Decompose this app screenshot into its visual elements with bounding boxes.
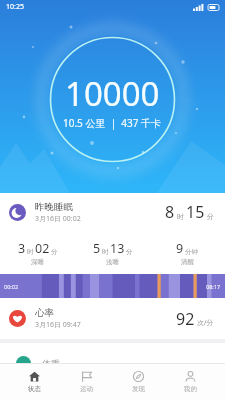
- button[interactable]: Profile: [164, 364, 216, 400]
- button[interactable]: 9: [150, 231, 225, 274]
- staticText: 昨晚睡眠: [35, 201, 73, 213]
- staticText: 13: [110, 240, 125, 257]
- button[interactable]: 5: [75, 231, 150, 274]
- staticText: 分: [51, 248, 58, 256]
- staticText: 我的: [184, 385, 197, 393]
- staticText: 分钟: [185, 248, 198, 256]
- staticText: 3月16日 00:02: [35, 214, 81, 224]
- staticText: 3: [18, 240, 26, 257]
- staticText: 深睡: [31, 258, 44, 266]
- staticText: 次/分: [197, 318, 214, 328]
- staticText: 时: [27, 248, 34, 256]
- staticText: 清醒: [181, 258, 194, 266]
- button[interactable]: 心率: [9, 298, 214, 339]
- button[interactable]: 体重: [16, 343, 214, 383]
- staticText: 3月16日 09:47: [35, 320, 81, 330]
- staticText: 5: [93, 240, 101, 257]
- staticText: 时: [102, 248, 109, 256]
- staticText: 运动: [80, 385, 93, 393]
- staticText: 8: [165, 201, 175, 223]
- button[interactable]: Status: [8, 364, 60, 400]
- staticText: 分: [207, 212, 214, 221]
- button[interactable]: 00:02: [0, 274, 225, 298]
- staticText: 状态: [28, 385, 41, 393]
- staticText: 9: [176, 240, 184, 257]
- staticText: 10.5 公里 | 437 千卡: [63, 116, 162, 130]
- staticText: 02: [35, 240, 50, 257]
- staticText: 15: [186, 201, 205, 223]
- staticText: 体重: [42, 358, 60, 369]
- staticText: 10:25: [6, 2, 24, 12]
- staticText: 分: [126, 248, 133, 256]
- button[interactable]: Discover: [112, 364, 164, 400]
- staticText: 发现: [132, 385, 145, 393]
- button[interactable]: 昨晚睡眠: [9, 193, 214, 231]
- button[interactable]: Workout: [60, 364, 112, 400]
- staticText: 10000: [65, 71, 160, 116]
- staticText: 92: [176, 308, 195, 330]
- staticText: 00:02: [4, 283, 19, 290]
- staticText: 08:17: [206, 283, 221, 290]
- staticText: 时: [177, 212, 184, 221]
- button[interactable]: 3: [0, 231, 75, 274]
- staticText: 心率: [35, 307, 54, 319]
- staticText: 浅睡: [106, 258, 119, 266]
